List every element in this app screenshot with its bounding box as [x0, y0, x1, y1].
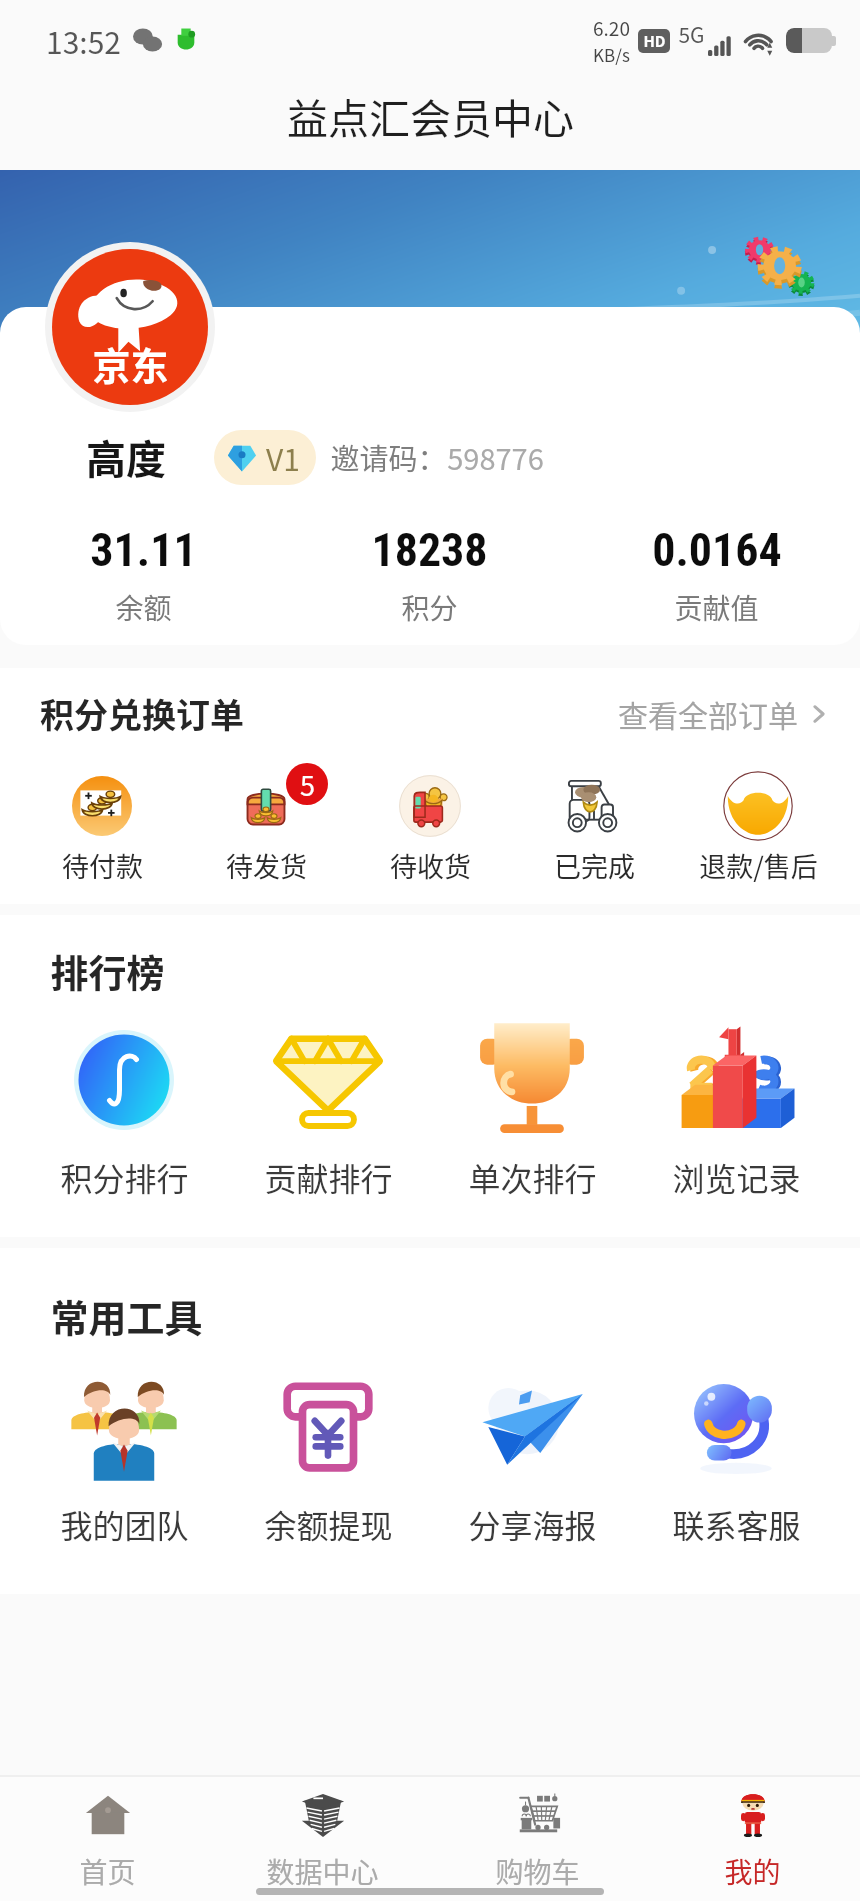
- staticText: 5: [300, 765, 315, 804]
- button[interactable]: 分享海报: [430, 1367, 634, 1547]
- button[interactable]: 积分排行: [22, 1020, 226, 1200]
- staticText: 待发货: [226, 846, 307, 885]
- staticText: 购物车: [495, 1851, 580, 1892]
- staticText: 已完成: [554, 846, 635, 885]
- button[interactable]: 待付款: [20, 768, 184, 885]
- staticText: 数据中心: [266, 1851, 379, 1892]
- button[interactable]: 已完成: [512, 768, 676, 885]
- staticText: 贡献排行: [264, 1154, 393, 1200]
- staticText: 待付款: [62, 846, 143, 885]
- button[interactable]: 首页: [0, 1775, 215, 1892]
- staticText: 6.20: [593, 14, 630, 42]
- button[interactable]: 31.11: [0, 523, 286, 628]
- staticText: 排行榜: [50, 943, 165, 998]
- staticText: 598776: [447, 436, 544, 478]
- staticText: 余额提现: [264, 1501, 393, 1547]
- staticText: 积分: [401, 587, 458, 628]
- button[interactable]: 联系客服: [634, 1367, 838, 1547]
- staticText: 13:52: [46, 19, 121, 62]
- staticText: 积分排行: [60, 1154, 189, 1200]
- button[interactable]: 贡献排行: [226, 1020, 430, 1200]
- staticText: 退款/售后: [699, 846, 818, 885]
- staticText: HD: [643, 30, 666, 52]
- button[interactable]: 5: [184, 768, 348, 885]
- button[interactable]: 购物车: [430, 1775, 645, 1892]
- staticText: 待收货: [390, 846, 471, 885]
- staticText: 5G: [678, 19, 705, 49]
- button[interactable]: 待收货: [348, 768, 512, 885]
- button[interactable]: 我的团队: [22, 1367, 226, 1547]
- staticText: 我的团队: [60, 1501, 189, 1547]
- staticText: 浏览记录: [672, 1154, 801, 1200]
- staticText: 邀请码：: [330, 436, 447, 478]
- button[interactable]: 浏览记录: [634, 1020, 838, 1200]
- button[interactable]: 我的: [645, 1775, 860, 1892]
- button[interactable]: 数据中心: [215, 1775, 430, 1892]
- staticText: V1: [266, 436, 300, 479]
- staticText: 18238: [371, 523, 488, 577]
- staticText: 联系客服: [672, 1501, 801, 1547]
- button[interactable]: 0.0164: [573, 523, 860, 628]
- button[interactable]: 退款/售后: [676, 768, 840, 885]
- button[interactable]: User avatar: [52, 249, 208, 405]
- staticText: 贡献值: [674, 587, 759, 628]
- staticText: 31.11: [90, 523, 197, 577]
- staticText: 分享海报: [468, 1501, 597, 1547]
- button[interactable]: 单次排行: [430, 1020, 634, 1200]
- staticText: KB/s: [593, 42, 630, 67]
- staticText: 高度: [86, 428, 166, 486]
- staticText: 我的: [724, 1851, 781, 1892]
- staticText: 单次排行: [468, 1154, 597, 1200]
- staticText: 查看全部订单: [618, 692, 798, 735]
- staticText: 常用工具: [50, 1288, 203, 1343]
- button[interactable]: 查看全部订单: [618, 686, 832, 741]
- staticText: 首页: [79, 1851, 136, 1892]
- button[interactable]: 余额提现: [226, 1367, 430, 1547]
- staticText: 积分兑换订单: [40, 689, 244, 738]
- staticText: 京东: [92, 336, 169, 391]
- button[interactable]: 18238: [286, 523, 573, 628]
- button[interactable]: V1: [214, 430, 316, 485]
- staticText: 益点汇会员中心: [287, 86, 574, 145]
- staticText: 余额: [115, 587, 172, 628]
- staticText: 0.0164: [652, 523, 782, 577]
